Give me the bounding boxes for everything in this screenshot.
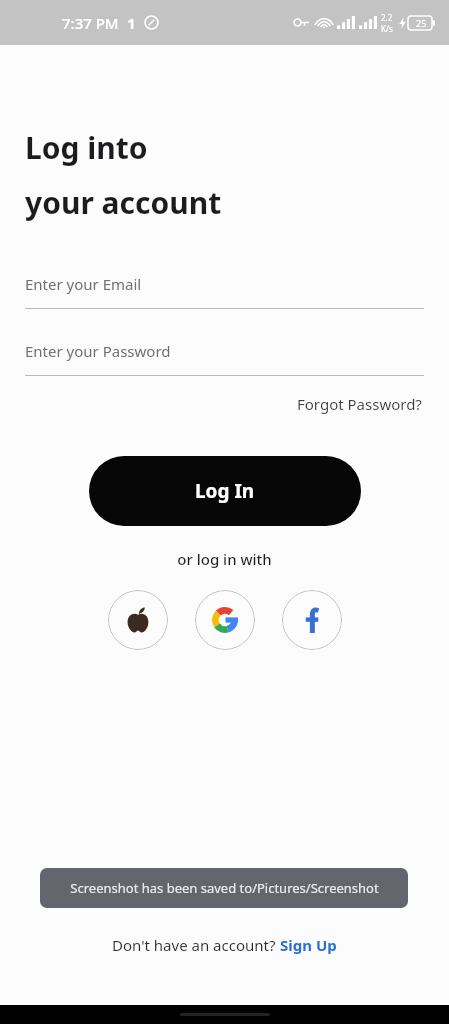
button[interactable]: Log In (89, 456, 361, 526)
staticText: Log into (25, 127, 148, 168)
button[interactable]: Enter your Password (25, 341, 424, 376)
staticText: Enter your Email (25, 274, 142, 294)
staticText: 2.2 (381, 12, 393, 23)
button[interactable]: Sign Up (280, 935, 337, 955)
staticText: Enter your Password (25, 341, 171, 361)
staticText: your account (25, 182, 222, 223)
button[interactable]: Forgot Password? (295, 390, 424, 418)
staticText: 25 (416, 17, 427, 29)
staticText: Forgot Password? (297, 394, 422, 414)
staticText: 7:37 PM (62, 13, 119, 33)
staticText: Log In (195, 478, 255, 504)
staticText: 1 (127, 13, 136, 33)
staticText: K/s (381, 23, 393, 34)
button[interactable]: Sign in with Google (195, 590, 255, 650)
button[interactable]: Sign in with Facebook (282, 590, 342, 650)
staticText: Sign Up (280, 935, 337, 955)
staticText: Don't have an account? (112, 935, 280, 955)
staticText: or log in with (177, 549, 272, 569)
staticText: Screenshot has been saved to/Pictures/Sc… (70, 879, 379, 897)
button[interactable]: Sign in with Apple (108, 590, 168, 650)
button[interactable]: Enter your Email (25, 274, 424, 309)
